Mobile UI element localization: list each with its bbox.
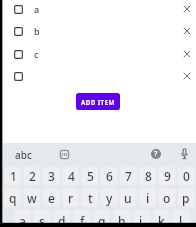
staticText: y bbox=[106, 190, 113, 206]
button[interactable] bbox=[0, 65, 196, 87]
staticText: l bbox=[179, 213, 183, 227]
staticText: 3 bbox=[48, 168, 55, 184]
staticText: g bbox=[98, 213, 106, 227]
button[interactable] bbox=[181, 25, 193, 37]
staticText: 1 bbox=[10, 168, 17, 184]
staticText: o bbox=[163, 190, 171, 206]
staticText: j bbox=[139, 213, 143, 227]
staticText: q bbox=[9, 190, 17, 206]
button[interactable]: ADD ITEM bbox=[76, 93, 120, 110]
staticText: ADD ITEM bbox=[81, 98, 115, 106]
staticText: i bbox=[146, 190, 150, 206]
staticText: 0 bbox=[183, 168, 190, 184]
staticText: t bbox=[88, 190, 93, 206]
staticText: 6 bbox=[106, 168, 113, 184]
staticText: a bbox=[19, 213, 26, 227]
button[interactable] bbox=[181, 48, 193, 60]
staticText: b bbox=[34, 25, 40, 37]
staticText: f bbox=[80, 213, 85, 227]
button[interactable]: c bbox=[0, 43, 196, 65]
staticText: a bbox=[34, 3, 40, 15]
staticText: 9 bbox=[164, 168, 171, 184]
staticText: s bbox=[39, 213, 45, 227]
staticText: r bbox=[68, 190, 74, 206]
button[interactable] bbox=[181, 70, 193, 82]
button[interactable]: b bbox=[0, 20, 196, 42]
staticText: u bbox=[124, 190, 132, 206]
staticText: 4 bbox=[68, 168, 75, 184]
button[interactable]: ? bbox=[151, 149, 161, 159]
staticText: e bbox=[48, 190, 55, 206]
staticText: h bbox=[118, 213, 126, 227]
staticText: 7 bbox=[125, 168, 132, 184]
staticText: ? bbox=[154, 149, 158, 159]
button[interactable]: a bbox=[0, 0, 196, 20]
staticText: d bbox=[58, 213, 66, 227]
staticText: 2 bbox=[29, 168, 36, 184]
staticText: c bbox=[34, 48, 39, 60]
staticText: 5 bbox=[87, 168, 94, 184]
staticText: w bbox=[27, 190, 37, 206]
staticText: p bbox=[182, 190, 190, 206]
button[interactable] bbox=[181, 3, 193, 15]
staticText: abc bbox=[15, 148, 32, 162]
staticText: 8 bbox=[145, 168, 152, 184]
staticText: k bbox=[158, 213, 165, 227]
